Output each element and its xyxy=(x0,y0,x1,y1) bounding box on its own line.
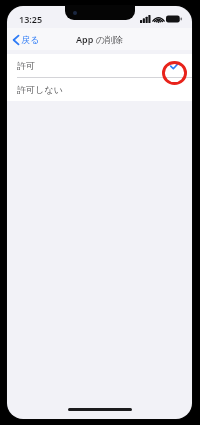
button[interactable]: 許可 xyxy=(7,54,192,77)
staticText: 13:25 xyxy=(19,13,43,25)
staticText: App の削除 xyxy=(76,33,123,45)
staticText: 許可 xyxy=(17,60,35,71)
button[interactable]: 戻る xyxy=(7,32,46,47)
staticText: 戻る xyxy=(21,34,40,45)
staticText: 許可しない xyxy=(17,84,63,95)
button[interactable]: 許可しない xyxy=(7,78,192,101)
